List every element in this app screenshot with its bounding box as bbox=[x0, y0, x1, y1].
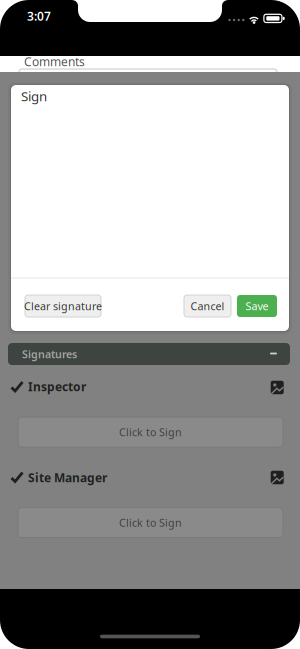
staticText: Comments bbox=[24, 53, 85, 69]
staticText: Click to Sign bbox=[119, 515, 182, 530]
staticText: Site Manager bbox=[28, 469, 107, 485]
button[interactable]: Click to Sign bbox=[18, 417, 283, 447]
button[interactable]: Cancel bbox=[184, 295, 231, 317]
button[interactable]: View Inspector signature bbox=[271, 381, 284, 394]
button[interactable]: Save bbox=[237, 295, 277, 317]
staticText: Sign bbox=[21, 87, 47, 105]
button[interactable]: View Site Manager signature bbox=[271, 471, 284, 484]
staticText: Inspector bbox=[28, 378, 86, 394]
staticText: Click to Sign bbox=[119, 425, 182, 439]
staticText: Save bbox=[245, 299, 268, 313]
staticText: Clear signature bbox=[24, 299, 102, 313]
staticText: Signatures bbox=[22, 347, 77, 361]
button[interactable]: Collapse Signatures bbox=[8, 343, 290, 365]
button[interactable]: Click to Sign bbox=[18, 507, 283, 537]
staticText: Cancel bbox=[190, 299, 224, 313]
staticText: 3:07 bbox=[27, 8, 51, 24]
button[interactable]: Clear signature bbox=[25, 295, 101, 317]
